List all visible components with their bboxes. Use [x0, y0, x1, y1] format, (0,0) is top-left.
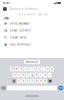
staticText: e — [20, 68, 21, 70]
button[interactable]: Add Reminder — [0, 41, 64, 48]
staticText: shortcut — [26, 60, 38, 64]
button[interactable]: u — [37, 67, 40, 71]
button[interactable]: p — [50, 67, 54, 71]
staticText: l — [49, 74, 50, 76]
staticText: i — [42, 68, 43, 70]
button[interactable]: f — [26, 73, 29, 77]
staticText: Send Message — [10, 22, 30, 25]
button[interactable]: e — [19, 67, 23, 71]
button[interactable]: d — [21, 73, 25, 77]
button[interactable]: z — [17, 79, 21, 83]
staticText: m — [44, 80, 46, 82]
staticText: z — [18, 80, 19, 82]
staticText: 9:41 — [3, 1, 9, 5]
button[interactable]: Create Note — [0, 34, 64, 41]
staticText: Create Note — [10, 36, 27, 39]
button[interactable]: r — [24, 67, 27, 71]
button[interactable]: g — [30, 73, 34, 77]
staticText: c — [27, 80, 28, 82]
staticText: p — [51, 68, 52, 70]
button[interactable]: j — [39, 73, 43, 77]
button[interactable]: App icon — [3, 7, 7, 11]
staticText: x — [23, 80, 24, 82]
button[interactable]: a — [12, 73, 16, 77]
staticText: q — [12, 68, 13, 70]
staticText: w — [16, 68, 18, 70]
button[interactable]: t — [28, 67, 32, 71]
staticText: 123 — [2, 86, 5, 89]
button[interactable]: k — [43, 73, 47, 77]
button[interactable]: Delete — [48, 79, 52, 83]
button[interactable]: l — [48, 73, 51, 77]
button[interactable]: Shift — [12, 79, 16, 83]
button[interactable]: q — [10, 67, 14, 71]
button[interactable]: v — [30, 79, 34, 83]
button[interactable]: w — [15, 67, 18, 71]
button[interactable]: Share Content — [0, 27, 64, 34]
staticText: n — [40, 80, 41, 82]
staticText: Choose where to send this — [16, 13, 47, 16]
staticText: h — [36, 74, 37, 76]
staticText: r — [25, 68, 26, 70]
button[interactable]: c — [26, 79, 29, 83]
button[interactable]: x — [21, 79, 25, 83]
staticText: s — [18, 74, 19, 76]
button[interactable]: n — [39, 79, 43, 83]
staticText: a — [14, 74, 15, 76]
button[interactable]: o — [45, 67, 49, 71]
staticText: Add Reminder — [10, 43, 31, 46]
staticText: Choose a shortcut — [9, 7, 38, 11]
button[interactable]: b — [35, 79, 38, 83]
staticText: u — [38, 68, 39, 70]
staticText: y — [34, 68, 35, 70]
button[interactable]: i — [41, 67, 45, 71]
staticText: f — [27, 74, 28, 76]
button[interactable]: 123 — [1, 86, 6, 90]
button[interactable]: s — [17, 73, 21, 77]
staticText: Share Content — [10, 29, 31, 32]
button[interactable]: h — [34, 73, 38, 77]
staticText: k — [45, 74, 46, 76]
staticText: Apps — [3, 17, 8, 20]
button[interactable]: m — [43, 79, 47, 83]
button[interactable]: Send Message — [0, 20, 64, 27]
staticText: o — [47, 68, 48, 70]
button[interactable]: y — [32, 67, 36, 71]
staticText: t — [29, 68, 30, 70]
button[interactable]: Send — [58, 86, 63, 90]
